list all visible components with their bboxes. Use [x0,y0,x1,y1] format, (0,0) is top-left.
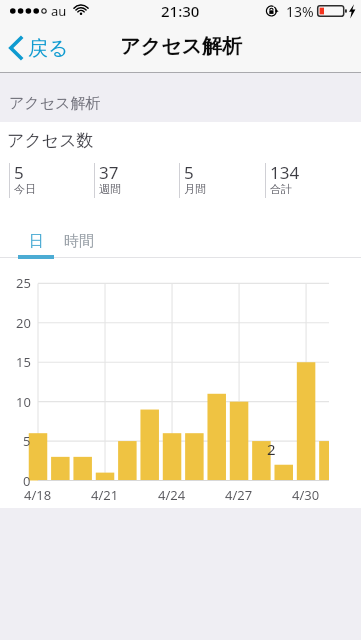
button[interactable]: 時間 [60,225,98,258]
staticText: 時間 [64,232,94,251]
staticText: 4/21 [91,486,119,504]
staticText: 4/24 [158,486,186,504]
staticText: アクセス数 [7,130,94,151]
staticText: 戻る [28,36,69,61]
staticText: 5 [184,161,194,184]
button[interactable]: 戻る [0,29,83,67]
staticText: 134 [270,161,300,184]
staticText: 今日 [14,182,36,196]
staticText: アクセス解析 [9,94,101,113]
staticText: 4/27 [225,486,253,504]
staticText: 20 [16,314,31,332]
staticText: 5 [14,161,24,184]
staticText: 13% [286,2,314,21]
staticText: 4/18 [24,486,52,504]
staticText: 15 [16,353,31,371]
staticText: 日 [29,232,44,251]
staticText: au [51,2,67,20]
staticText: 25 [16,274,31,292]
button[interactable]: 日 [18,225,54,258]
button[interactable]: 37 [94,163,179,198]
staticText: 0 [23,472,31,490]
staticText: 合計 [270,182,292,196]
button[interactable]: 5 [179,163,265,198]
button[interactable]: 5 [9,163,94,198]
staticText: アクセス解析 [120,34,242,59]
button[interactable]: 134 [265,163,351,198]
staticText: 5 [23,432,31,450]
staticText: 21:30 [161,1,200,21]
staticText: 4/30 [292,486,320,504]
staticText: 2 [267,439,276,459]
staticText: 月間 [184,182,206,196]
staticText: 週間 [99,182,121,196]
staticText: 37 [99,161,119,184]
staticText: 10 [16,393,31,411]
